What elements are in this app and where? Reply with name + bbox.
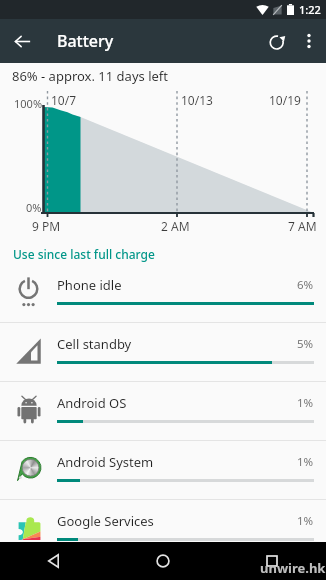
staticText: 5% (297, 336, 314, 352)
staticText: Use since last full charge (13, 246, 155, 262)
staticText: 9 PM (32, 218, 61, 234)
staticText: unwire.hk (260, 559, 326, 577)
button[interactable]: Android OS (0, 382, 326, 441)
staticText: 7 AM (288, 218, 317, 234)
staticText: 100% (14, 96, 43, 111)
staticText: 1:22 (299, 2, 321, 17)
button[interactable]: Android System (0, 441, 326, 500)
button[interactable]: Home (108, 542, 217, 580)
button[interactable]: Back (0, 19, 44, 63)
button[interactable]: Recents (217, 542, 326, 580)
staticText: 10/7 (51, 92, 77, 108)
button[interactable]: More options (292, 19, 326, 63)
button[interactable]: Phone idle (0, 264, 326, 323)
staticText: 0% (26, 200, 42, 215)
staticText: Android OS (57, 394, 297, 412)
staticText: 1% (297, 454, 314, 470)
staticText: 1% (297, 513, 314, 529)
staticText: Google Services (57, 512, 297, 530)
staticText: Android System (57, 453, 297, 471)
staticText: Battery (57, 30, 114, 52)
staticText: Phone idle (57, 276, 297, 294)
button[interactable]: Refresh (262, 19, 292, 63)
staticText: Cell standby (57, 335, 297, 353)
staticText: 1% (297, 395, 314, 411)
button[interactable]: Back (0, 542, 108, 580)
button[interactable]: Cell standby (0, 323, 326, 382)
button[interactable]: Google Services (0, 500, 326, 559)
staticText: 10/19 (269, 92, 301, 108)
staticText: 10/13 (181, 92, 213, 108)
staticText: 86% - approx. 11 days left (12, 67, 168, 85)
staticText: 2 AM (161, 218, 190, 234)
staticText: 6% (297, 277, 314, 293)
